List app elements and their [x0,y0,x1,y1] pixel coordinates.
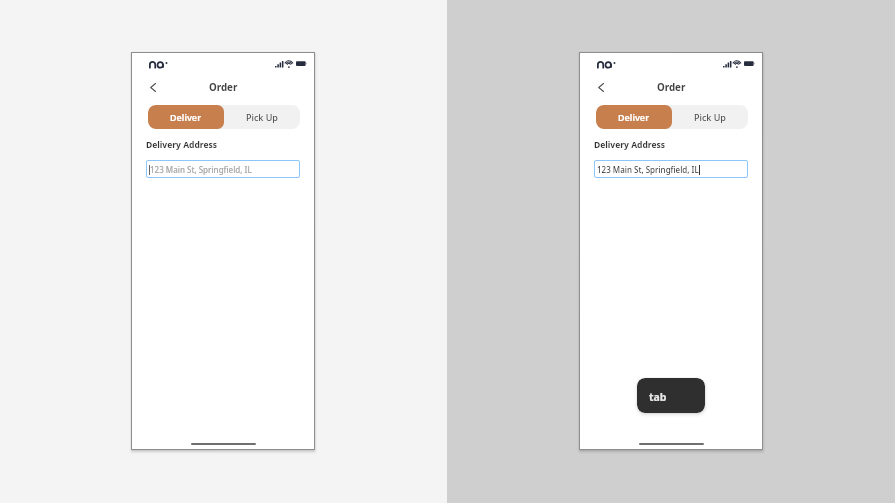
button[interactable]: Back [593,78,609,96]
staticText: 123 Main St, Springfield, IL [597,164,699,175]
staticText: Delivery Address [146,139,218,151]
staticText: Order [657,81,686,94]
staticText: Deliver [618,111,650,123]
staticText: Deliver [170,111,202,123]
button[interactable]: Deliver [148,105,224,129]
staticText: Delivery Address [594,139,666,151]
staticText: tab [649,390,667,404]
button[interactable]: 123 Main St, Springfield, IL [146,160,300,178]
staticText: Pick Up [246,111,278,123]
button[interactable]: 123 Main St, Springfield, IL [594,160,748,178]
staticText: Pick Up [694,111,726,123]
staticText: 123 Main St, Springfield, IL [150,164,252,175]
button[interactable]: Back [145,78,161,96]
button[interactable]: tab [637,378,705,413]
button[interactable]: Pick Up [672,105,748,129]
button[interactable]: Pick Up [224,105,300,129]
button[interactable]: Deliver [596,105,672,129]
staticText: Order [209,81,238,94]
